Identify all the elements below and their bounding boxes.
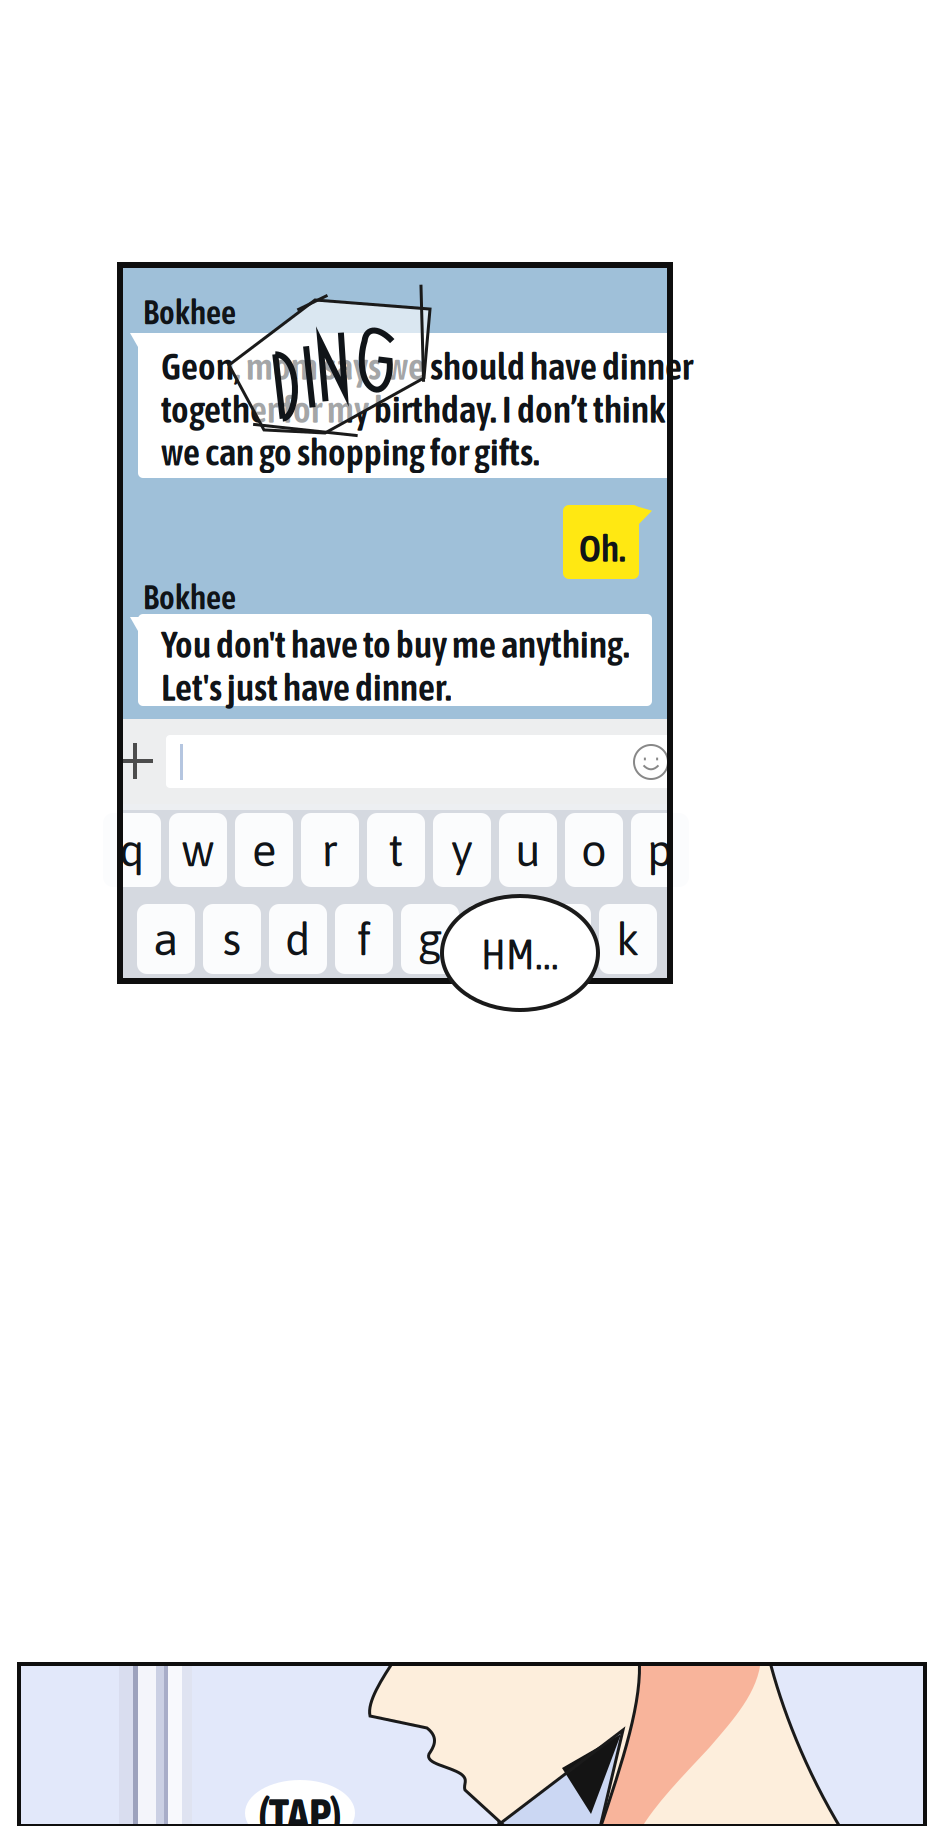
button[interactable]: q [103,813,161,887]
staticText: u [515,824,540,876]
button[interactable]: g [401,904,459,974]
button[interactable]: e [235,813,293,887]
staticText: k [616,913,640,965]
button[interactable]: Emoji [634,745,668,779]
button[interactable]: j [533,904,591,974]
staticText: f [356,913,371,965]
button[interactable]: k [599,904,657,974]
button[interactable]: h [467,904,525,974]
button[interactable]: a [137,904,195,974]
staticText: HM... [481,930,559,978]
staticText: t [388,824,404,876]
staticText: w [181,824,215,876]
button[interactable]: f [335,904,393,974]
staticText: o [581,824,607,876]
button[interactable]: r [301,813,359,887]
button[interactable]: w [169,813,227,887]
button[interactable]: d [269,904,327,974]
staticText: Bokhee [143,578,236,616]
button[interactable]: Add attachment [117,743,153,779]
staticText: p [647,824,673,876]
staticText: r [321,824,338,876]
staticText: y [451,824,473,876]
staticText: q [119,824,145,876]
staticText: Geon, mom says we should have dinner tog… [161,345,693,473]
staticText: g [417,913,442,965]
button[interactable]: p [631,813,689,887]
staticText: s [222,913,241,965]
button[interactable]: o [565,813,623,887]
button[interactable]: u [499,813,557,887]
staticText: You don't have to buy me anything. Let's… [161,623,630,709]
button[interactable]: t [367,813,425,887]
staticText: (TAP) [258,1789,342,1826]
staticText: a [153,913,178,965]
staticText: e [252,824,276,876]
staticText: h [483,913,509,965]
button[interactable]: y [433,813,491,887]
staticText: d [285,913,311,965]
button[interactable]: s [203,904,261,974]
staticText: Oh. [579,527,626,570]
staticText: Bokhee [143,293,236,331]
